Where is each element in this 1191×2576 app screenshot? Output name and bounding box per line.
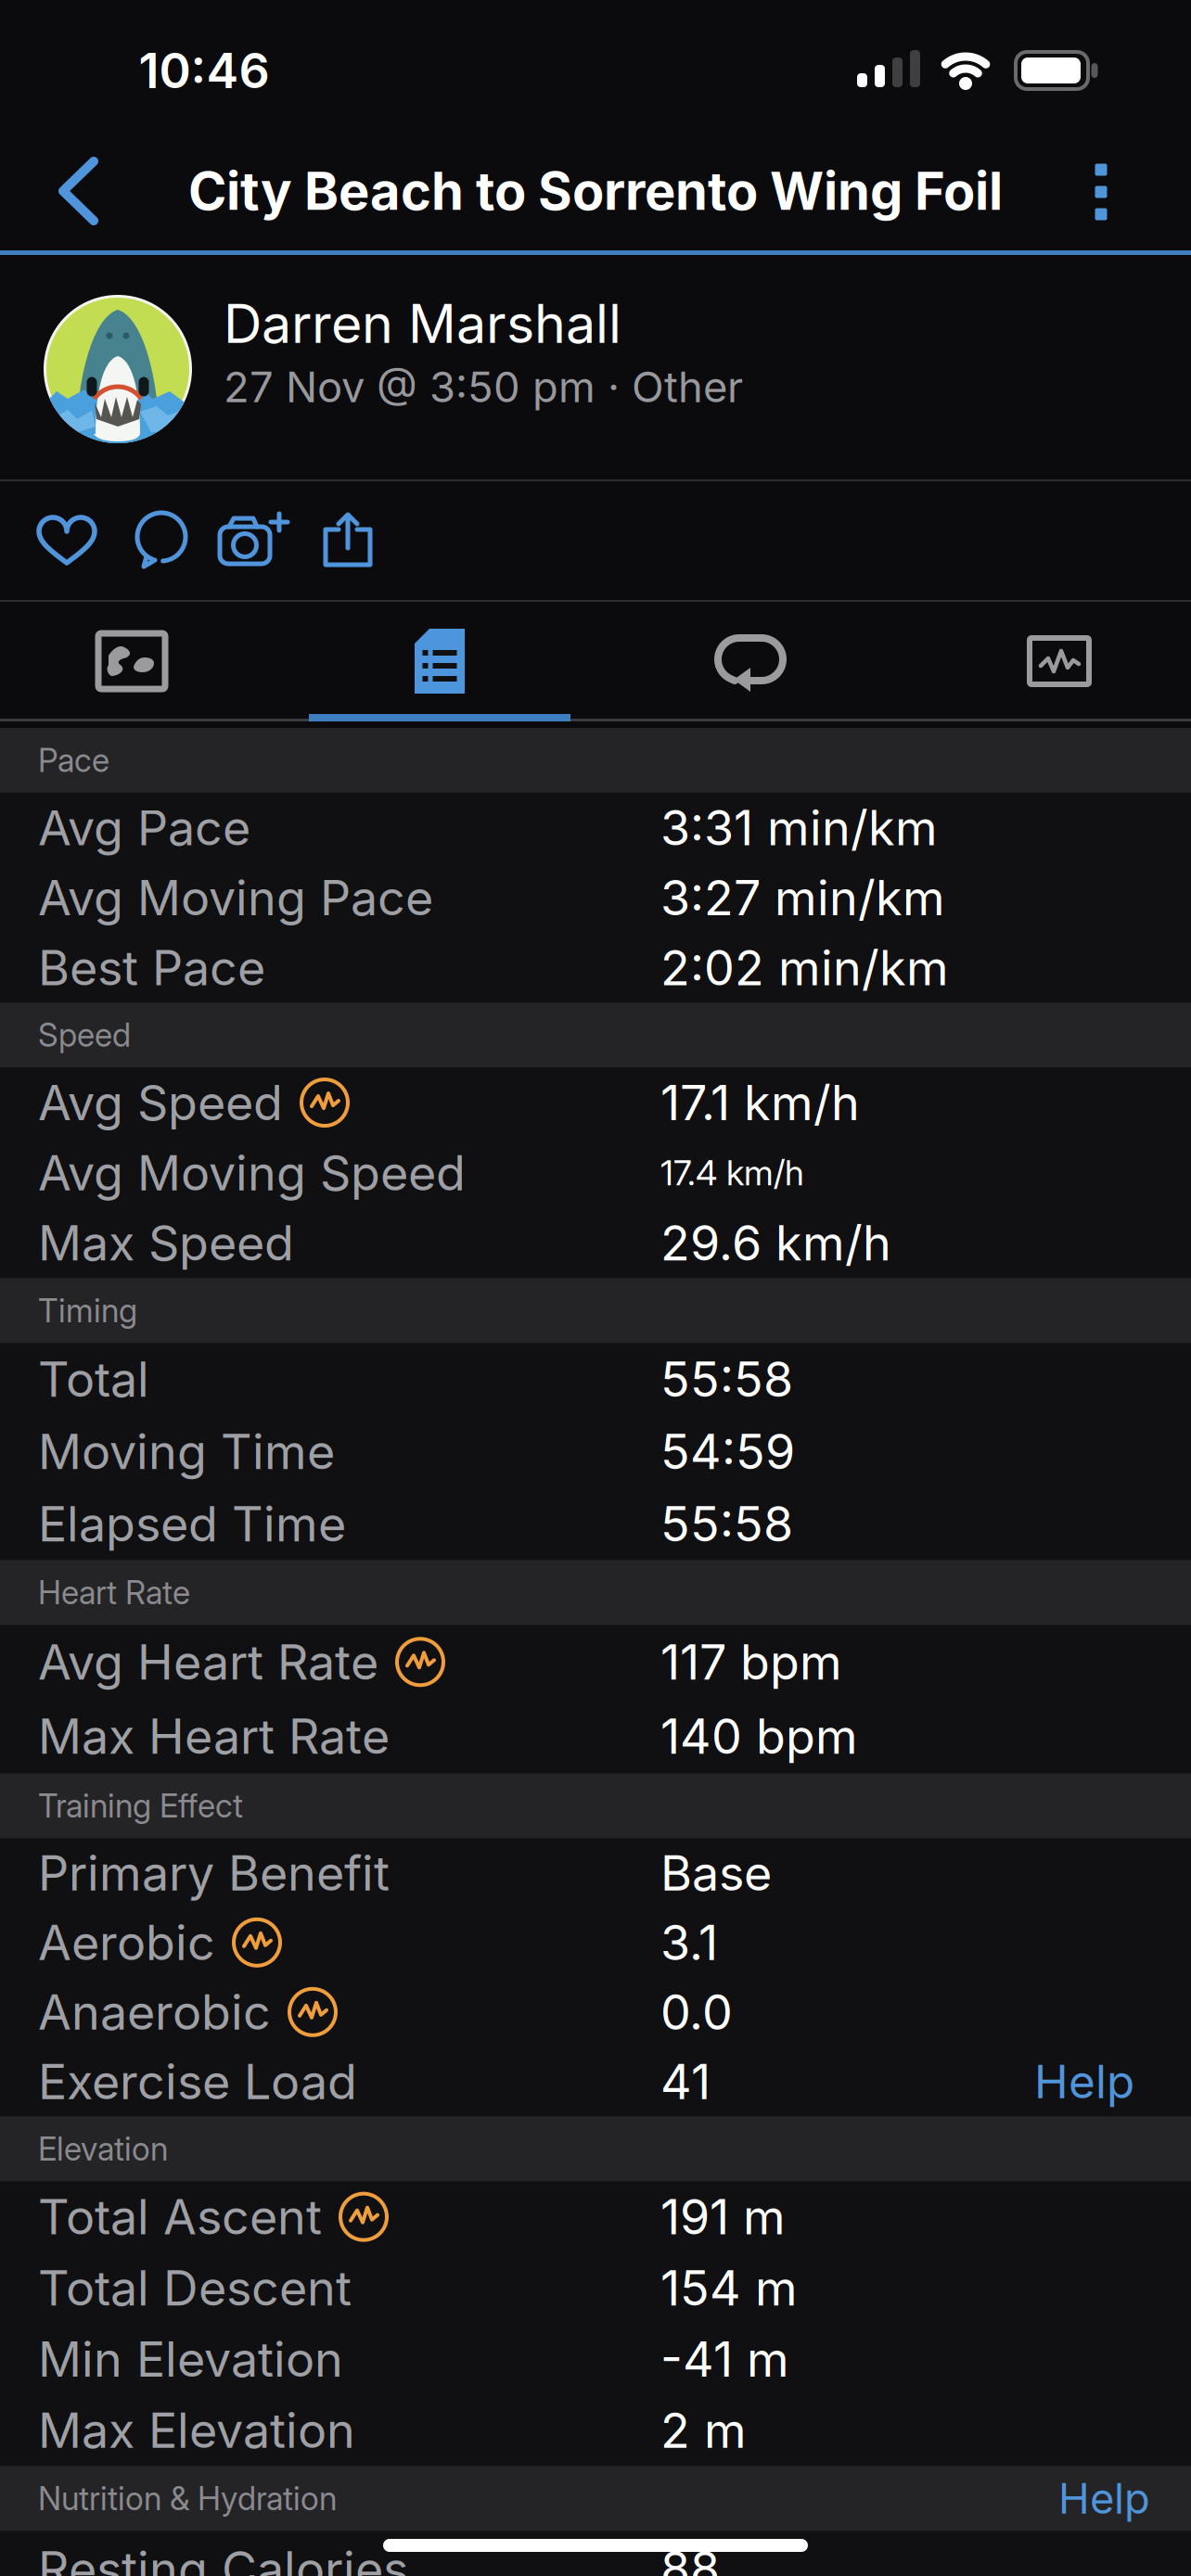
staticText: Resting Calories bbox=[38, 2540, 408, 2576]
staticText: Help bbox=[1034, 2055, 1134, 2109]
staticText: Elevation bbox=[38, 2130, 168, 2168]
staticText: Avg Speed bbox=[38, 1074, 283, 1131]
staticText: Heart Rate bbox=[38, 1574, 190, 1611]
staticText: 117 bpm bbox=[660, 1634, 842, 1690]
staticText: Anaerobic bbox=[38, 1984, 271, 2040]
staticText: 140 bpm bbox=[660, 1708, 858, 1765]
staticText: Primary Benefit bbox=[38, 1844, 390, 1901]
button[interactable]: Stats bbox=[415, 629, 465, 694]
staticText: Help bbox=[1058, 2474, 1150, 2523]
staticText: Avg Pace bbox=[38, 799, 250, 856]
staticText: 3:31 min/km bbox=[660, 799, 938, 856]
staticText: Timing bbox=[38, 1292, 137, 1330]
button[interactable]: Add photo bbox=[220, 511, 288, 570]
button[interactable]: Help bbox=[1058, 2474, 1150, 2523]
staticText: 27 Nov @ 3:50 pm · Other bbox=[224, 362, 743, 412]
staticText: 0.0 bbox=[660, 1984, 733, 2040]
staticText: Elapsed Time bbox=[38, 1495, 346, 1552]
staticText: Avg Heart Rate bbox=[38, 1634, 378, 1690]
staticText: 41 bbox=[660, 2053, 711, 2110]
staticText: Total Descent bbox=[38, 2260, 352, 2316]
staticText: Aerobic bbox=[38, 1914, 215, 1971]
staticText: 29.6 km/h bbox=[660, 1215, 891, 1271]
staticText: 2:02 min/km bbox=[660, 939, 949, 996]
button[interactable]: Share bbox=[318, 511, 378, 570]
staticText: Max Heart Rate bbox=[38, 1708, 390, 1765]
button[interactable]: Charts bbox=[1028, 636, 1091, 686]
staticText: Moving Time bbox=[38, 1423, 335, 1480]
staticText: Max Speed bbox=[38, 1215, 294, 1271]
staticText: Total Ascent bbox=[38, 2188, 322, 2245]
button[interactable]: Map bbox=[96, 631, 167, 691]
staticText: Exercise Load bbox=[38, 2053, 357, 2110]
button[interactable]: Back bbox=[56, 156, 102, 226]
staticText: 3:27 min/km bbox=[660, 869, 945, 926]
staticText: 154 m bbox=[660, 2260, 798, 2316]
staticText: 17.1 km/h bbox=[660, 1074, 860, 1131]
staticText: Avg Moving Pace bbox=[38, 869, 433, 926]
staticText: 191 m bbox=[660, 2188, 786, 2245]
staticText: 10:46 bbox=[139, 42, 269, 99]
staticText: 2 m bbox=[660, 2402, 747, 2459]
button[interactable]: Help bbox=[1034, 2055, 1134, 2109]
staticText: 17.4 km/h bbox=[660, 1152, 804, 1193]
staticText: Training Effect bbox=[38, 1787, 243, 1825]
staticText: 3.1 bbox=[660, 1914, 718, 1971]
button[interactable]: Like bbox=[37, 511, 96, 570]
staticText: 55:58 bbox=[660, 1351, 793, 1408]
staticText: Speed bbox=[38, 1016, 131, 1054]
staticText: Max Elevation bbox=[38, 2402, 355, 2459]
button[interactable]: More options bbox=[1082, 159, 1120, 224]
staticText: Best Pace bbox=[38, 939, 265, 996]
staticText: Nutrition & Hydration bbox=[38, 2479, 337, 2517]
button[interactable]: Comment bbox=[131, 511, 190, 570]
staticText: 88 bbox=[660, 2540, 720, 2576]
staticText: Base bbox=[660, 1844, 772, 1901]
staticText: Total bbox=[38, 1351, 149, 1408]
staticText: 54:59 bbox=[660, 1423, 795, 1480]
staticText: City Beach to Sorrento Wing Foil bbox=[188, 160, 1003, 222]
staticText: 55:58 bbox=[660, 1495, 793, 1552]
staticText: -41 m bbox=[660, 2331, 789, 2388]
staticText: Pace bbox=[38, 741, 109, 779]
staticText: Avg Moving Speed bbox=[38, 1144, 466, 1201]
staticText: Min Elevation bbox=[38, 2331, 343, 2388]
button[interactable]: Laps bbox=[714, 634, 787, 688]
staticText: Darren Marshall bbox=[224, 292, 621, 355]
